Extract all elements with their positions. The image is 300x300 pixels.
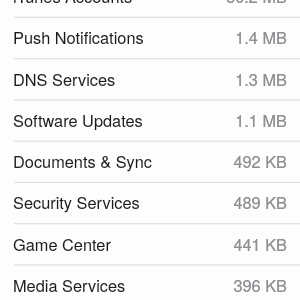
button[interactable]: Software Updates — [0, 100, 300, 141]
staticText: 50.2 MB — [226, 0, 287, 7]
staticText: DNS Services — [13, 67, 116, 90]
staticText: Media Services — [13, 273, 126, 296]
button[interactable]: Push Notifications — [0, 17, 300, 58]
staticText: 1.4 MB — [235, 25, 287, 48]
button[interactable]: iTunes Accounts — [0, 0, 300, 17]
staticText: Push Notifications — [13, 25, 144, 48]
staticText: DNS Services — [13, 67, 116, 90]
staticText: Security Services — [13, 190, 140, 213]
staticText: iTunes Accounts — [13, 0, 133, 7]
staticText: 441 KB — [233, 232, 287, 255]
staticText: Documents & Sync — [13, 149, 152, 172]
staticText: 50.2 MB — [226, 0, 287, 7]
staticText: 489 KB — [233, 190, 287, 213]
staticText: 396 KB — [233, 273, 287, 296]
staticText: 396 KB — [233, 273, 287, 296]
staticText: Software Updates — [13, 108, 143, 131]
button[interactable]: Security Services — [0, 182, 300, 223]
staticText: Software Updates — [13, 108, 143, 131]
staticText: 1.3 MB — [235, 67, 287, 90]
staticText: 1.1 MB — [235, 108, 287, 131]
staticText: 441 KB — [233, 232, 287, 255]
staticText: 492 KB — [233, 149, 287, 172]
staticText: Media Services — [13, 273, 126, 296]
staticText: 1.3 MB — [235, 67, 287, 90]
staticText: Push Notifications — [13, 25, 144, 48]
button[interactable]: DNS Services — [0, 59, 300, 100]
staticText: Documents & Sync — [13, 149, 152, 172]
staticText: iTunes Accounts — [13, 0, 133, 7]
staticText: 489 KB — [233, 190, 287, 213]
button[interactable]: Media Services — [0, 265, 300, 300]
staticText: Game Center — [13, 232, 111, 255]
button[interactable]: Game Center — [0, 224, 300, 265]
staticText: Security Services — [13, 190, 140, 213]
button[interactable]: Documents & Sync — [0, 141, 300, 182]
staticText: 492 KB — [233, 149, 287, 172]
staticText: 1.4 MB — [235, 25, 287, 48]
staticText: Game Center — [13, 232, 111, 255]
staticText: 1.1 MB — [235, 108, 287, 131]
